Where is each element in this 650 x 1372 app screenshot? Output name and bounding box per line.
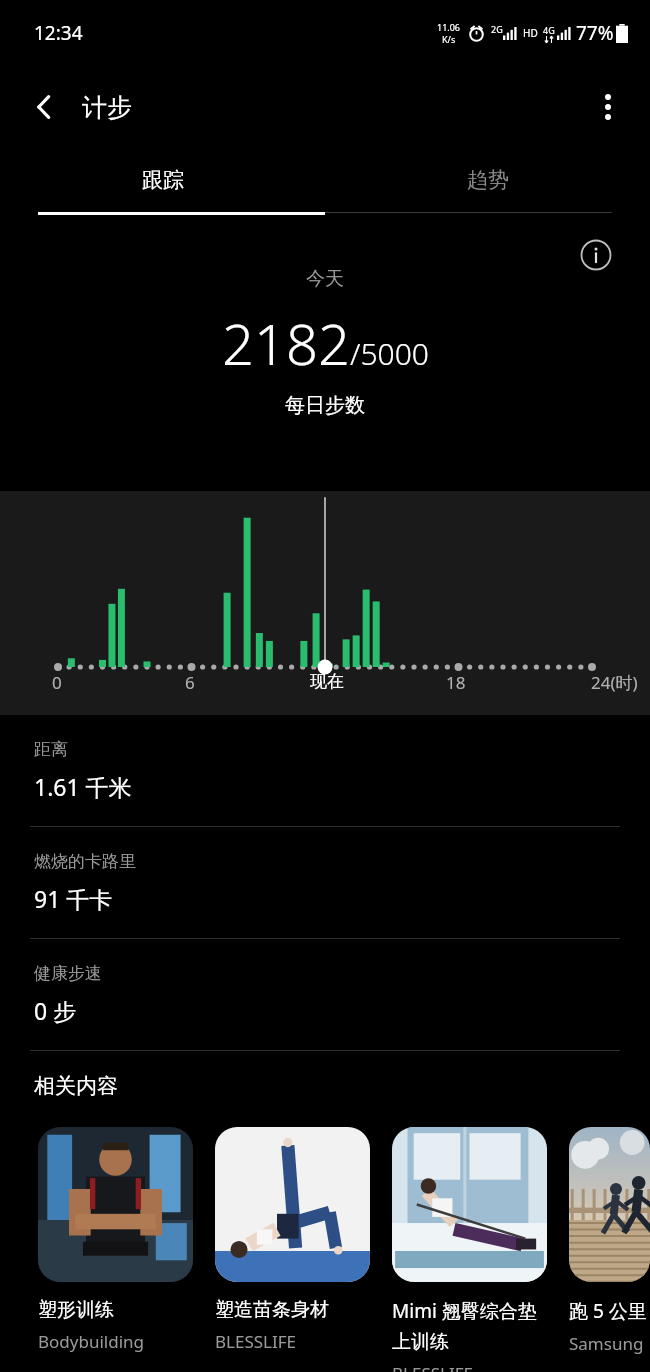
button[interactable]: 塑造苗条身材 [215, 1127, 370, 1353]
button[interactable]: Back [18, 81, 70, 133]
button[interactable]: 跑 5 公里 [569, 1127, 650, 1355]
staticText: 上训练 [392, 1330, 449, 1354]
staticText: 计步 [82, 92, 132, 123]
staticText: 0 步 [34, 995, 77, 1026]
button[interactable]: Information [576, 235, 616, 275]
button[interactable]: 燃烧的卡路里 [0, 827, 650, 939]
staticText: 24(时) [591, 671, 638, 694]
staticText: 燃烧的卡路里 [34, 851, 136, 872]
button[interactable]: 距离 [0, 715, 650, 827]
button[interactable]: 跟踪 [0, 148, 325, 212]
staticText: Mimi 翘臀综合垫 [392, 1298, 547, 1324]
staticText: 0 [52, 671, 62, 694]
staticText: 现在 [310, 671, 344, 692]
staticText: 11.06 [437, 21, 461, 33]
staticText: 2182/5000 [222, 305, 429, 381]
staticText: 趋势 [467, 167, 509, 193]
staticText: K/s [442, 33, 456, 45]
staticText: Bodybuilding [38, 1330, 144, 1353]
staticText: 2G [491, 23, 503, 35]
staticText: 1.61 千米 [34, 771, 132, 802]
staticText: 跟踪 [142, 167, 184, 193]
button[interactable]: Mimi 翘臀综合垫 [392, 1127, 547, 1372]
staticText: 相关内容 [34, 1073, 118, 1099]
staticText: BLESSLIFE [215, 1330, 297, 1353]
staticText: BLESSLIFE [392, 1362, 474, 1372]
staticText: 跑 5 公里 [569, 1298, 650, 1324]
button[interactable]: 趋势 [325, 148, 650, 212]
staticText: 12:34 [34, 20, 83, 46]
staticText: 77% [576, 20, 614, 46]
staticText: 健康步速 [34, 963, 102, 984]
button[interactable]: 塑形训练 [38, 1127, 193, 1353]
staticText: 今天 [306, 267, 344, 291]
staticText: 6 [185, 671, 195, 694]
staticText: 18 [446, 671, 466, 694]
staticText: HD [523, 26, 538, 40]
staticText: 4G [543, 24, 555, 36]
staticText: 塑造苗条身材 [215, 1298, 370, 1322]
staticText: 每日步数 [285, 393, 365, 418]
button[interactable]: More options [582, 81, 634, 133]
staticText: 距离 [34, 739, 68, 760]
button[interactable]: 健康步速 [0, 939, 650, 1051]
staticText: 塑形训练 [38, 1298, 193, 1322]
staticText: 91 千卡 [34, 883, 113, 914]
staticText: Samsung [569, 1332, 644, 1355]
